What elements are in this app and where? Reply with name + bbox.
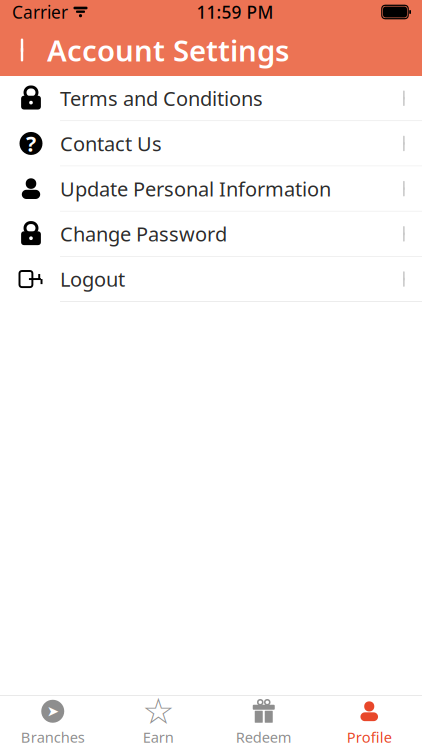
button[interactable]: ? (0, 121, 422, 166)
button[interactable]: ➤ (0, 692, 105, 750)
button[interactable]: Redeem (211, 692, 316, 750)
button[interactable]: Change Password (0, 212, 422, 257)
staticText: ➤ (47, 703, 59, 719)
button[interactable]: Logout (0, 257, 422, 302)
staticText: Update Personal Information (60, 175, 331, 202)
staticText: Redeem (236, 727, 292, 747)
staticText: Contact Us (60, 130, 162, 157)
staticText: Account Settings (47, 30, 289, 69)
staticText: Carrier (12, 0, 68, 23)
button[interactable]: ☆ (105, 692, 211, 750)
staticText: 11:59 PM (196, 0, 273, 23)
staticText: Terms and Conditions (60, 85, 263, 112)
button[interactable]: Update Personal Information (0, 166, 422, 212)
button[interactable]: Profile (316, 692, 422, 750)
staticText: ? (26, 129, 36, 158)
staticText: Earn (143, 727, 174, 747)
staticText: Branches (21, 727, 85, 747)
staticText: Profile (347, 727, 392, 747)
button[interactable]: Back (0, 28, 44, 72)
staticText: Logout (60, 266, 125, 292)
staticText: ☆ (142, 691, 174, 732)
staticText: Change Password (60, 221, 227, 247)
button[interactable]: Terms and Conditions (0, 76, 422, 121)
